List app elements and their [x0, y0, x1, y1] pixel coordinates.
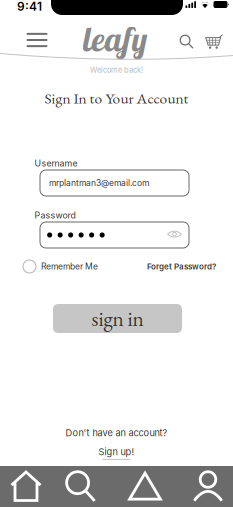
staticText: mrplantman3@email.com [49, 178, 149, 188]
button[interactable]: Sign up! [0, 446, 233, 460]
button[interactable]: Search [58, 466, 104, 507]
staticText: sign in [91, 305, 143, 332]
button[interactable]: Discover [122, 466, 168, 507]
button[interactable]: Profile [185, 466, 231, 507]
staticText: Remember Me [41, 261, 98, 272]
button[interactable]: Menu [20, 27, 54, 53]
staticText: 9:41 [17, 0, 42, 13]
staticText: Welcome back! [90, 65, 143, 74]
button[interactable]: Forget Password? [126, 259, 216, 274]
button[interactable]: Remember Me [23, 259, 119, 274]
button[interactable]: sign in [53, 304, 182, 333]
staticText: Password [34, 210, 75, 221]
staticText: Don't have an account? [65, 427, 167, 438]
button[interactable]: Cart [202, 30, 226, 54]
button[interactable]: Home [3, 466, 49, 507]
staticText: Username [34, 158, 77, 169]
staticText: Sign In to Your Account [44, 88, 188, 108]
staticText: leafy [82, 18, 147, 60]
button[interactable]: Search [176, 30, 198, 54]
staticText: Sign up! [98, 446, 134, 457]
staticText: Forget Password? [147, 262, 216, 271]
